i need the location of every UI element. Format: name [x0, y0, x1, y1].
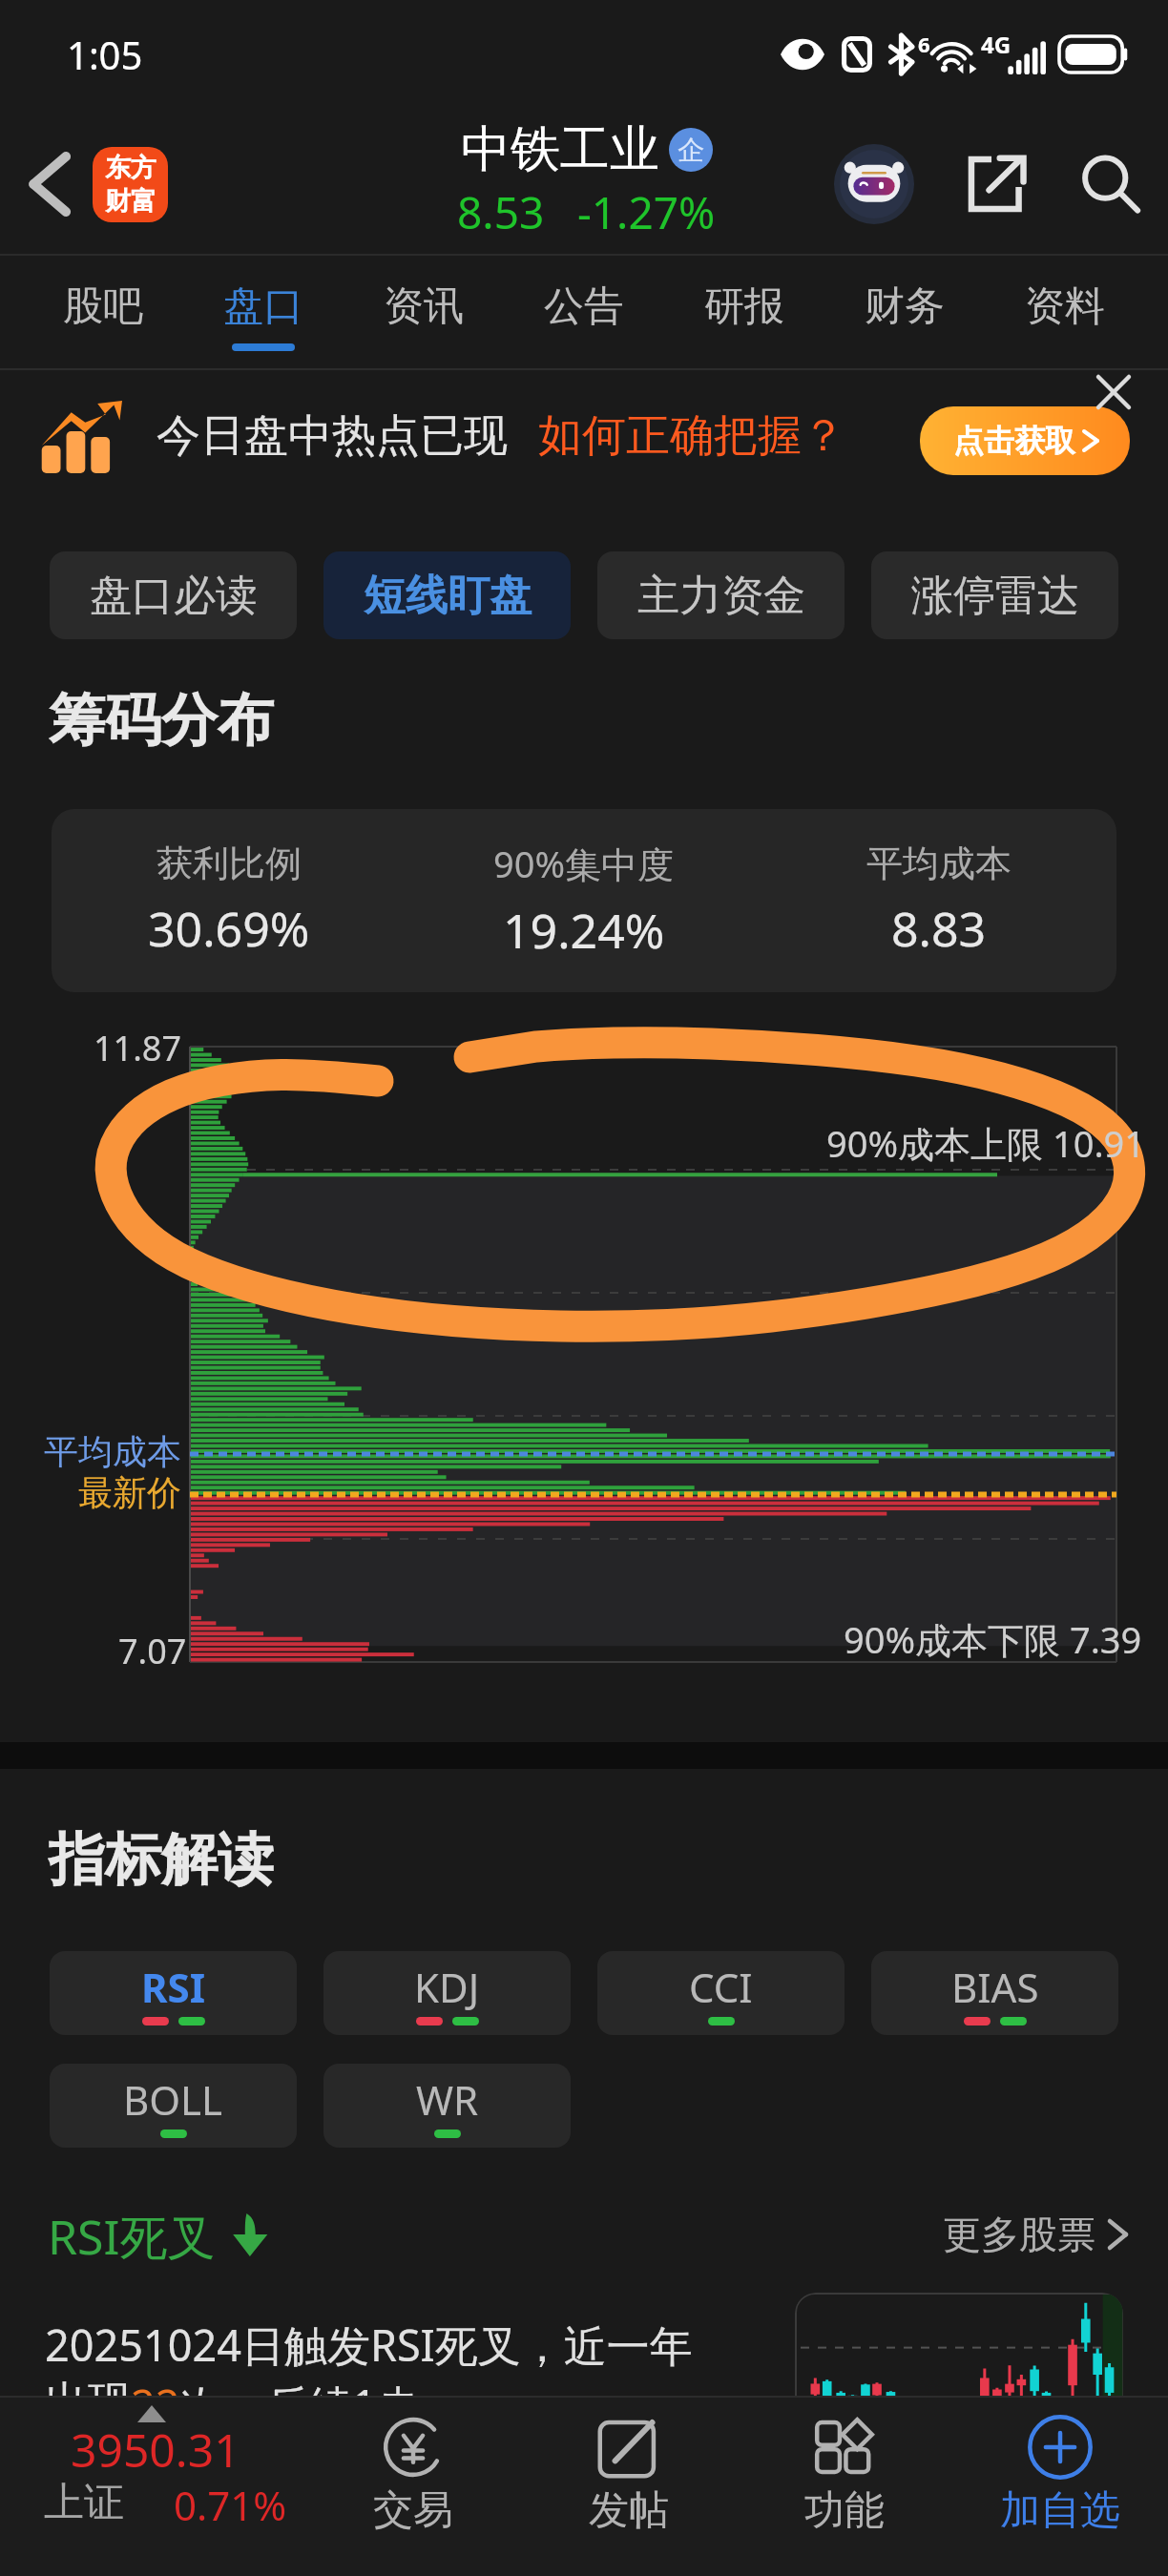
- staticText: 平均成本: [44, 1430, 181, 1473]
- staticText: 主力资金: [637, 570, 805, 622]
- staticText: 8.83: [891, 896, 987, 961]
- staticText: 90%集中度: [493, 839, 675, 888]
- staticText: BOLL: [123, 2072, 223, 2127]
- button[interactable]: Close: [1084, 363, 1143, 422]
- button[interactable]: RSI: [50, 1951, 297, 2035]
- staticText: 次，后续1走: [180, 2376, 420, 2434]
- button[interactable]: 盘口必读: [50, 551, 297, 639]
- button[interactable]: BIAS: [871, 1951, 1118, 2035]
- staticText: 今日盘中热点已现: [156, 408, 508, 464]
- button[interactable]: 主力资金: [597, 551, 845, 639]
- staticText: 点击获取: [953, 422, 1075, 460]
- staticText: 指标解读: [49, 1824, 274, 1895]
- button[interactable]: Assistant: [834, 144, 914, 224]
- staticText: 90%成本下限 7.39: [844, 1614, 1142, 1664]
- staticText: 获利比例: [156, 841, 302, 886]
- staticText: 20251024日触发RSI死叉，近一年: [45, 2316, 693, 2374]
- staticText: 研报: [704, 281, 784, 332]
- staticText: 财富: [105, 185, 156, 218]
- button[interactable]: 研报: [664, 256, 824, 368]
- button[interactable]: 发帖: [521, 2396, 737, 2552]
- staticText: 财务: [865, 281, 945, 332]
- button[interactable]: 点击获取: [920, 406, 1130, 475]
- button[interactable]: East Money: [93, 147, 168, 222]
- staticText: 3950.31: [71, 2419, 240, 2481]
- staticText: -1.27%: [577, 182, 716, 242]
- staticText: 盘口必读: [90, 570, 258, 622]
- button[interactable]: 股吧: [23, 256, 183, 368]
- button[interactable]: CCI: [597, 1951, 845, 2035]
- staticText: 最新价: [78, 1471, 181, 1514]
- staticText: 加自选: [1000, 2485, 1120, 2536]
- staticText: 公告: [544, 281, 624, 332]
- staticText: 资料: [1025, 281, 1105, 332]
- button[interactable]: Search: [1074, 148, 1147, 220]
- button[interactable]: 功能: [737, 2396, 952, 2552]
- button[interactable]: 资料: [985, 256, 1145, 368]
- staticText: 涨停雷达: [911, 570, 1079, 622]
- button[interactable]: 短线盯盘: [323, 551, 571, 639]
- staticText: RSI: [141, 1960, 206, 2014]
- staticText: 如何正确把握？: [538, 408, 845, 464]
- staticText: CCI: [689, 1960, 753, 2014]
- staticText: 功能: [804, 2485, 885, 2536]
- button[interactable]: Share: [960, 148, 1032, 220]
- staticText: 0.71%: [174, 2478, 287, 2532]
- staticText: 19.24%: [503, 898, 665, 963]
- button[interactable]: KDJ: [323, 1951, 571, 2035]
- staticText: KDJ: [414, 1960, 480, 2014]
- staticText: 22: [131, 2376, 180, 2434]
- staticText: 中铁工业: [461, 118, 659, 181]
- button[interactable]: RSI死叉: [48, 2204, 269, 2265]
- button[interactable]: 公告: [504, 256, 664, 368]
- staticText: 平均成本: [866, 841, 1012, 886]
- button[interactable]: 资讯: [344, 256, 504, 368]
- button[interactable]: 加自选: [952, 2396, 1168, 2552]
- staticText: 交易: [373, 2485, 453, 2536]
- staticText: 股吧: [63, 281, 143, 332]
- staticText: 上证: [44, 2478, 124, 2528]
- staticText: 6: [918, 30, 930, 58]
- staticText: 更多股票: [943, 2211, 1095, 2258]
- staticText: 7.07: [118, 1628, 187, 1674]
- staticText: 1:05: [67, 29, 143, 80]
- staticText: 筹码分布: [49, 685, 274, 756]
- button[interactable]: 3950.31: [0, 2396, 324, 2548]
- staticText: 30.69%: [148, 896, 310, 961]
- button[interactable]: 交易: [305, 2396, 521, 2552]
- staticText: 出现: [45, 2376, 131, 2430]
- button[interactable]: BOLL: [50, 2064, 297, 2148]
- staticText: 发帖: [589, 2485, 669, 2536]
- button[interactable]: 盘口: [183, 256, 344, 368]
- staticText: 资讯: [384, 281, 464, 332]
- button[interactable]: 更多股票: [943, 2211, 1126, 2258]
- staticText: RSI死叉: [48, 2204, 216, 2265]
- button[interactable]: Back: [8, 142, 92, 226]
- staticText: 短线盯盘: [364, 570, 532, 622]
- staticText: 企: [678, 134, 704, 167]
- button[interactable]: 获利比例: [52, 809, 1116, 992]
- staticText: BIAS: [951, 1960, 1039, 2014]
- button[interactable]: WR: [323, 2064, 571, 2148]
- staticText: 11.87: [94, 1025, 182, 1071]
- staticText: 90%成本上限 10.91: [826, 1118, 1146, 1168]
- staticText: 8.53: [457, 182, 545, 242]
- staticText: 4G: [981, 29, 1012, 60]
- staticText: 盘口: [223, 281, 303, 332]
- staticText: WR: [416, 2072, 479, 2127]
- staticText: 东方: [105, 152, 156, 184]
- button[interactable]: 涨停雷达: [871, 551, 1118, 639]
- button[interactable]: 财务: [824, 256, 985, 368]
